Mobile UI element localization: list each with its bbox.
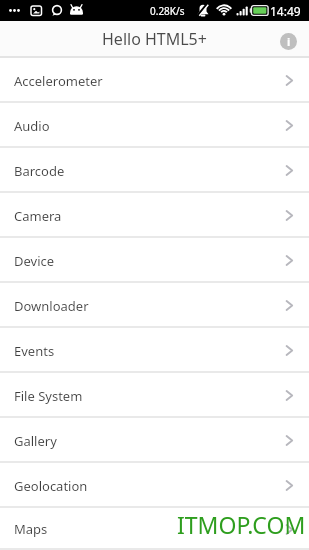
- staticText: Device: [14, 252, 55, 270]
- staticText: 0.28K/s: [150, 4, 185, 18]
- staticText: 14:49: [270, 3, 301, 19]
- staticText: Accelerometer: [14, 72, 103, 90]
- button[interactable]: Camera: [0, 193, 309, 238]
- staticText: Camera: [14, 207, 62, 225]
- button[interactable]: Device: [0, 238, 309, 283]
- staticText: Downloader: [14, 297, 89, 315]
- button[interactable]: Events: [0, 328, 309, 373]
- staticText: Gallery: [14, 432, 57, 450]
- staticText: Barcode: [14, 162, 65, 180]
- button[interactable]: Maps: [0, 508, 309, 550]
- button[interactable]: i: [280, 33, 297, 50]
- staticText: ITMOP.COM: [177, 509, 306, 540]
- staticText: Hello HTML5+: [102, 28, 207, 50]
- button[interactable]: Audio: [0, 103, 309, 148]
- button[interactable]: Accelerometer: [0, 58, 309, 103]
- staticText: Geolocation: [14, 477, 88, 495]
- staticText: Audio: [14, 117, 50, 135]
- staticText: i: [287, 34, 291, 49]
- button[interactable]: Downloader: [0, 283, 309, 328]
- staticText: Maps: [14, 520, 48, 538]
- staticText: File System: [14, 387, 83, 405]
- staticText: Events: [14, 342, 55, 360]
- button[interactable]: File System: [0, 373, 309, 418]
- button[interactable]: Geolocation: [0, 463, 309, 508]
- button[interactable]: Gallery: [0, 418, 309, 463]
- button[interactable]: Barcode: [0, 148, 309, 193]
